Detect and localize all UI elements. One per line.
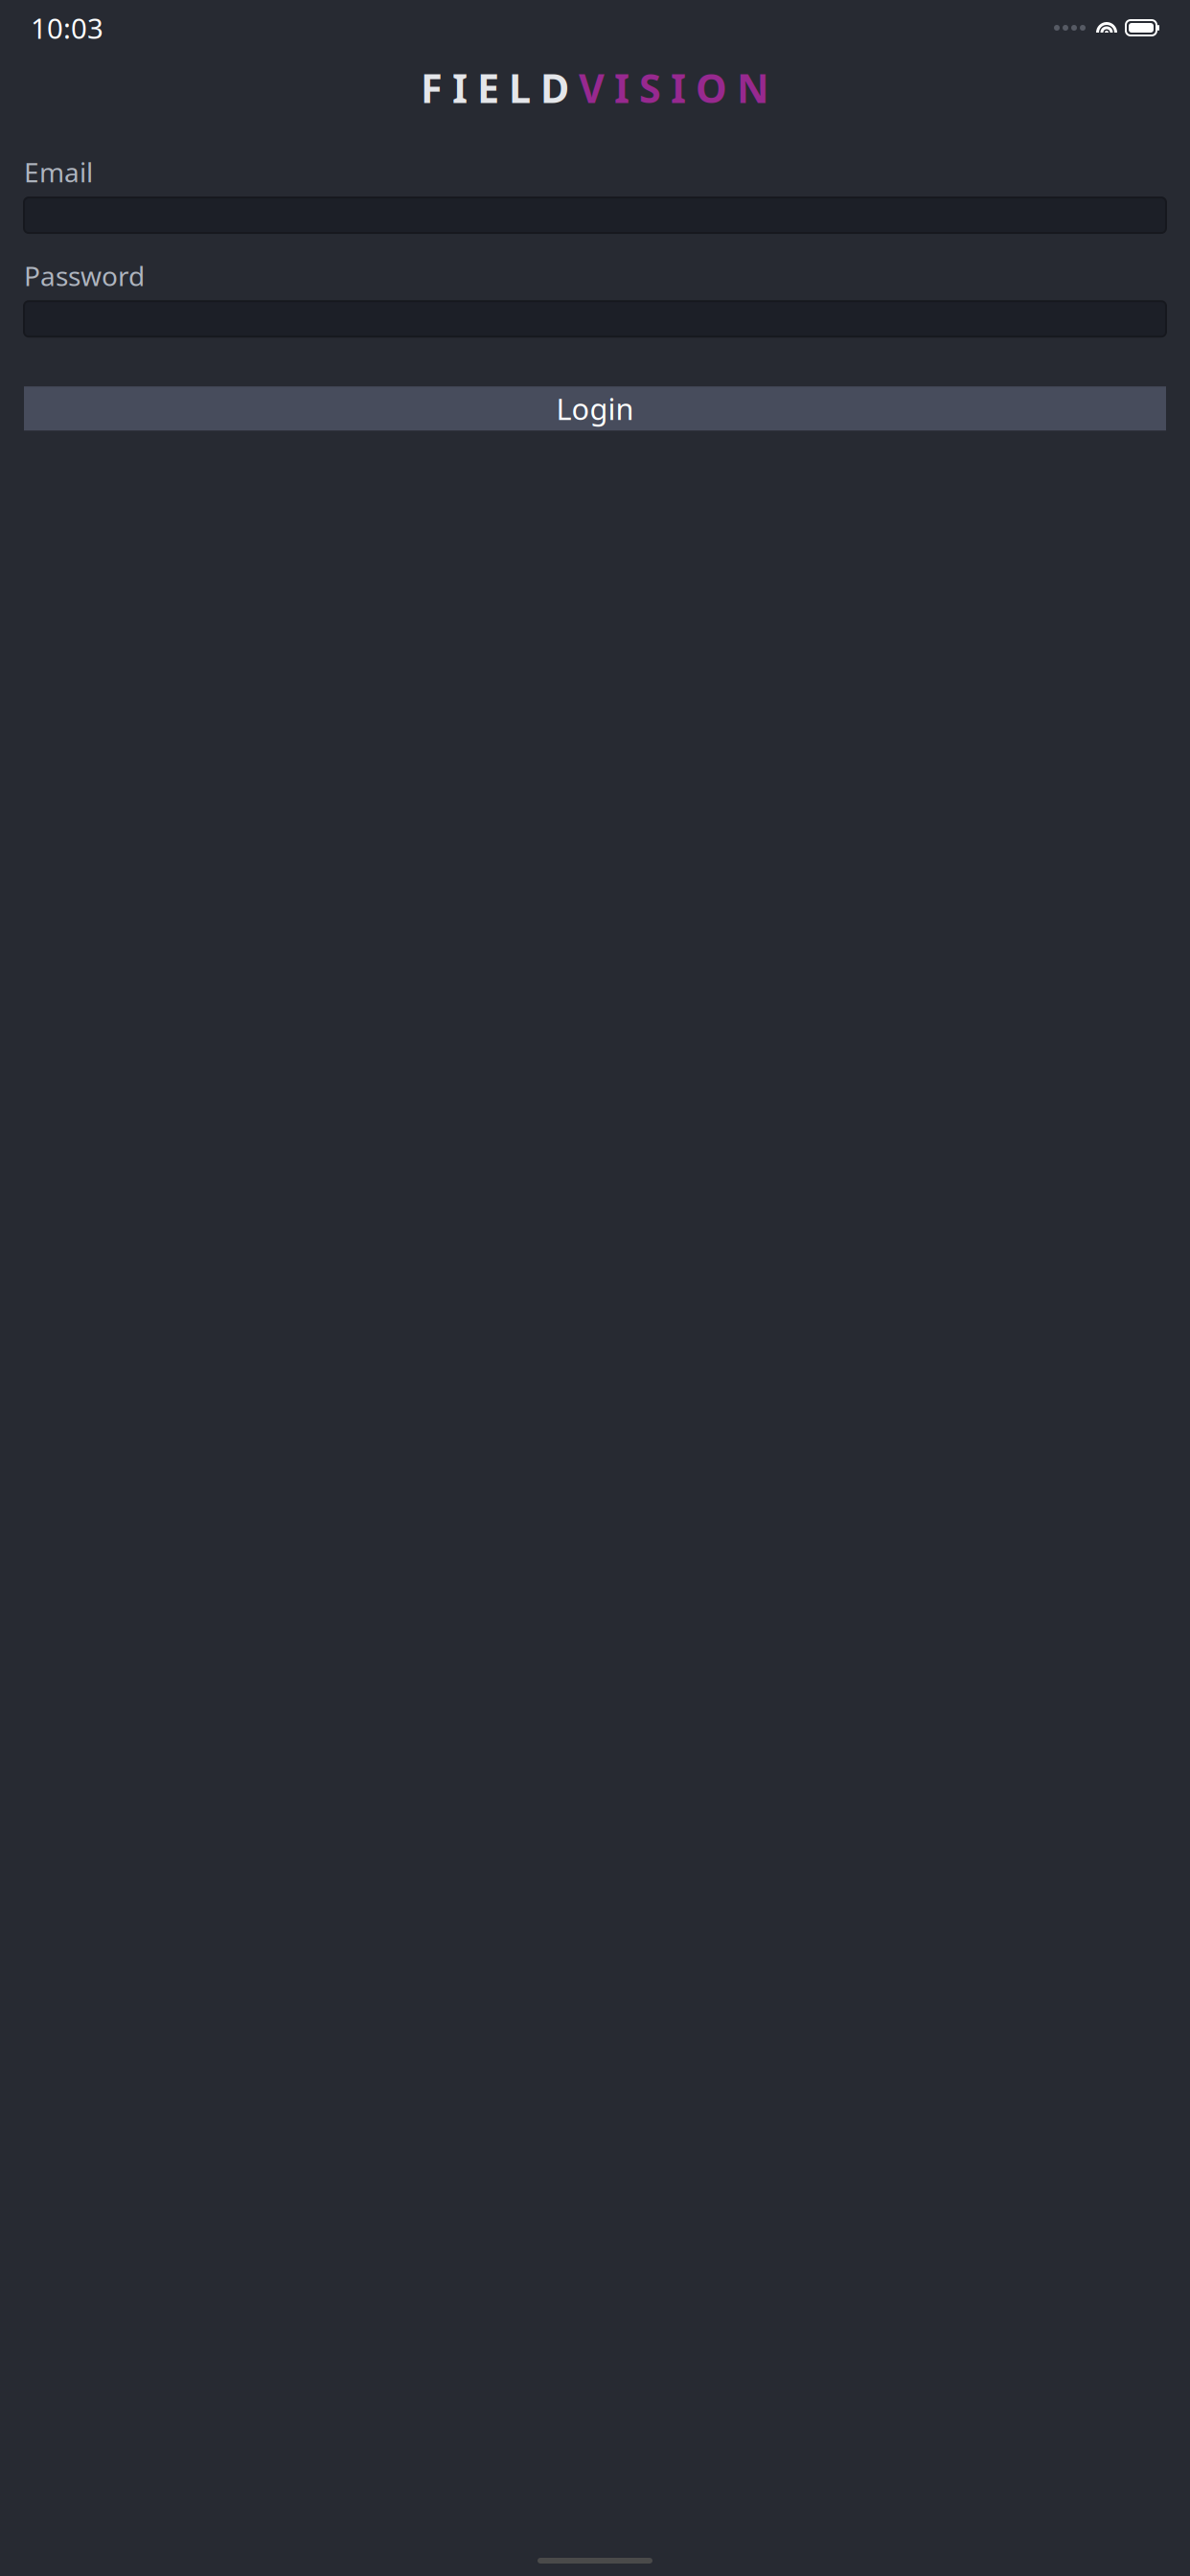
staticText: L xyxy=(509,61,531,114)
staticText: Password xyxy=(24,258,145,294)
staticText: E xyxy=(477,61,499,114)
staticText: N xyxy=(737,61,769,114)
staticText: D xyxy=(540,61,569,114)
staticText: 10:03 xyxy=(31,9,103,46)
staticText: V xyxy=(579,61,605,114)
staticText: F xyxy=(421,61,443,114)
staticText: S xyxy=(639,61,661,114)
staticText: I xyxy=(671,61,686,114)
staticText: Email xyxy=(24,154,93,190)
staticText: I xyxy=(614,61,629,114)
staticText: Login xyxy=(556,389,634,428)
button[interactable]: Login xyxy=(24,386,1166,431)
staticText: O xyxy=(696,61,727,114)
staticText: I xyxy=(452,61,468,114)
